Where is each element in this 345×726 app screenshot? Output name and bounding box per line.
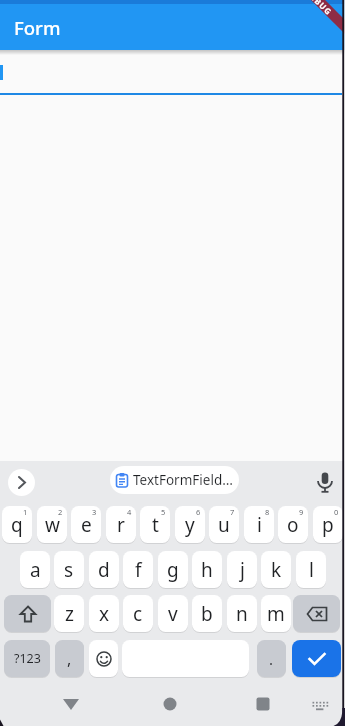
staticText: z [65,601,74,627]
staticText: v [168,601,178,627]
button[interactable]: TextFormField… [110,466,239,494]
staticText: f [135,557,142,583]
staticText: c [133,601,143,627]
button[interactable]: h [192,551,222,588]
button[interactable]: r [106,506,136,543]
button[interactable]: k [261,551,291,588]
button[interactable]: i [244,506,274,543]
button[interactable]: b [192,595,222,632]
button[interactable] [8,469,35,496]
staticText: s [64,557,74,583]
button[interactable]: m [261,595,291,632]
staticText: TextFormField… [133,471,233,489]
staticText: k [271,557,282,583]
button[interactable]: e [71,506,101,543]
button[interactable]: x [89,595,119,632]
staticText: j [240,557,245,583]
button[interactable]: c [123,595,153,632]
button[interactable] [4,595,51,632]
button[interactable]: . [257,640,286,677]
staticText: n [236,601,248,627]
button[interactable]: u [209,506,239,543]
staticText: DEBUG [304,0,335,17]
staticText: 9 [299,507,304,517]
staticText: p [322,512,334,538]
staticText: 4 [127,507,132,517]
button[interactable] [313,470,337,496]
button[interactable]: , [55,640,84,677]
staticText: 3 [92,507,97,517]
staticText: 8 [265,507,270,517]
staticText: w [45,512,60,538]
staticText: o [287,512,299,538]
button[interactable]: t [140,506,170,543]
button[interactable]: v [158,595,188,632]
button[interactable]: g [158,551,188,588]
button[interactable]: a [20,551,50,588]
button[interactable]: w [37,506,67,543]
button[interactable] [292,640,341,677]
staticText: t [152,512,159,538]
staticText: , [67,648,72,670]
staticText: 1 [23,507,28,517]
button[interactable]: n [227,595,257,632]
button[interactable]: o [278,506,308,543]
staticText: y [185,512,195,538]
staticText: Form [14,15,61,40]
staticText: l [309,557,314,583]
staticText: 2 [58,507,63,517]
button[interactable]: j [227,551,257,588]
staticText: ?123 [14,650,41,667]
button[interactable]: p [313,506,343,543]
staticText: 0 [334,507,339,517]
staticText: . [269,649,274,669]
staticText: 7 [230,507,235,517]
button[interactable]: f [123,551,153,588]
button[interactable] [89,640,118,677]
staticText: 6 [196,507,201,517]
button[interactable]: z [54,595,84,632]
staticText: 5 [161,507,166,517]
button[interactable]: ?123 [4,640,50,677]
staticText: g [167,557,179,583]
staticText: u [218,512,230,538]
button[interactable]: s [54,551,84,588]
staticText: i [257,512,262,538]
staticText: d [98,557,110,583]
staticText: q [11,512,23,538]
staticText: h [201,557,213,583]
staticText: a [30,557,41,583]
button[interactable] [293,595,340,632]
staticText: x [99,601,110,627]
staticText: b [201,601,213,627]
staticText: m [267,601,285,627]
button[interactable]: l [296,551,326,588]
button[interactable]: q [2,506,32,543]
staticText: e [81,512,92,538]
button[interactable]: y [175,506,205,543]
button[interactable]: d [89,551,119,588]
staticText: r [117,512,125,538]
